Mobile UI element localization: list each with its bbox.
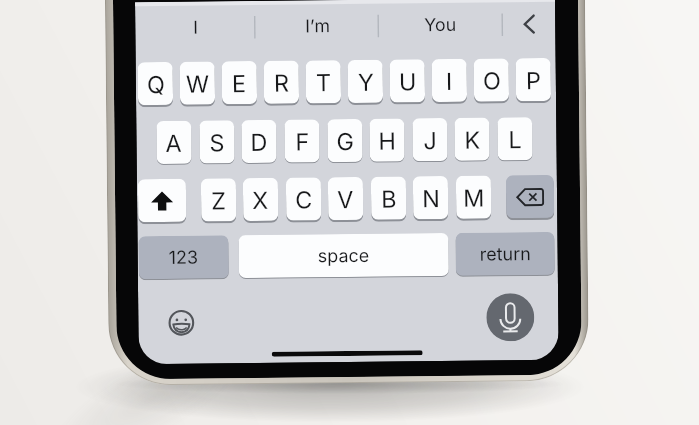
button[interactable]: B [371, 176, 406, 220]
staticText: R [274, 69, 290, 97]
staticText: You [424, 14, 456, 36]
button[interactable]: space [238, 233, 449, 278]
button[interactable]: Z [201, 178, 236, 222]
button[interactable]: return [455, 232, 555, 276]
staticText: return [480, 243, 532, 266]
staticText: L [508, 125, 523, 153]
button[interactable]: N [413, 176, 448, 219]
button[interactable]: E [222, 61, 257, 104]
staticText: E [232, 69, 247, 97]
button[interactable] [138, 179, 186, 222]
button[interactable]: I [135, 1, 255, 54]
staticText: Z [211, 186, 226, 214]
staticText: S [209, 128, 226, 156]
button[interactable]: I’m [255, 0, 379, 53]
staticText: I [193, 17, 198, 39]
staticText: V [337, 185, 354, 213]
button[interactable]: L [497, 117, 533, 160]
button[interactable]: K [454, 117, 490, 161]
button[interactable]: D [241, 120, 277, 163]
button[interactable]: U [390, 59, 425, 103]
staticText: O [483, 66, 501, 95]
button[interactable]: M [456, 175, 491, 219]
button[interactable]: R [264, 60, 299, 104]
button[interactable]: C [286, 177, 321, 221]
button[interactable]: You [378, 0, 502, 52]
staticText: P [526, 66, 542, 94]
button[interactable]: V [328, 177, 363, 220]
staticText: G [336, 127, 355, 155]
staticText: B [381, 184, 397, 213]
staticText: Y [358, 68, 374, 96]
button[interactable] [168, 310, 194, 336]
button[interactable]: P [516, 58, 551, 101]
staticText: K [464, 126, 481, 154]
staticText: T [316, 68, 332, 96]
staticText: 123 [169, 247, 199, 269]
button[interactable] [486, 293, 535, 342]
button[interactable]: Q [138, 62, 173, 105]
button[interactable]: T [306, 60, 341, 103]
button[interactable]: I [432, 59, 467, 102]
staticText: D [250, 128, 268, 156]
staticText: W [186, 69, 210, 98]
staticText: C [295, 185, 313, 214]
staticText: I’m [305, 15, 330, 37]
button[interactable]: F [284, 119, 320, 163]
staticText: I [446, 67, 453, 95]
staticText: J [423, 126, 438, 154]
button[interactable]: X [243, 178, 278, 221]
staticText: A [165, 129, 183, 157]
button[interactable]: O [474, 58, 509, 102]
staticText: X [252, 186, 269, 214]
staticText: F [295, 127, 310, 155]
button[interactable]: J [412, 118, 448, 161]
staticText: N [422, 184, 440, 212]
staticText: space [318, 245, 370, 267]
button[interactable] [506, 175, 554, 218]
button[interactable]: Y [348, 60, 383, 103]
button[interactable]: W [180, 61, 215, 105]
staticText: U [399, 67, 417, 95]
button[interactable] [502, 0, 555, 50]
staticText: M [463, 184, 485, 212]
button[interactable]: S [199, 120, 235, 164]
button[interactable]: G [327, 119, 363, 162]
button[interactable]: A [156, 121, 192, 164]
button[interactable]: H [369, 118, 405, 162]
staticText: H [378, 126, 397, 155]
button[interactable]: 123 [138, 235, 229, 279]
staticText: Q [147, 70, 165, 98]
